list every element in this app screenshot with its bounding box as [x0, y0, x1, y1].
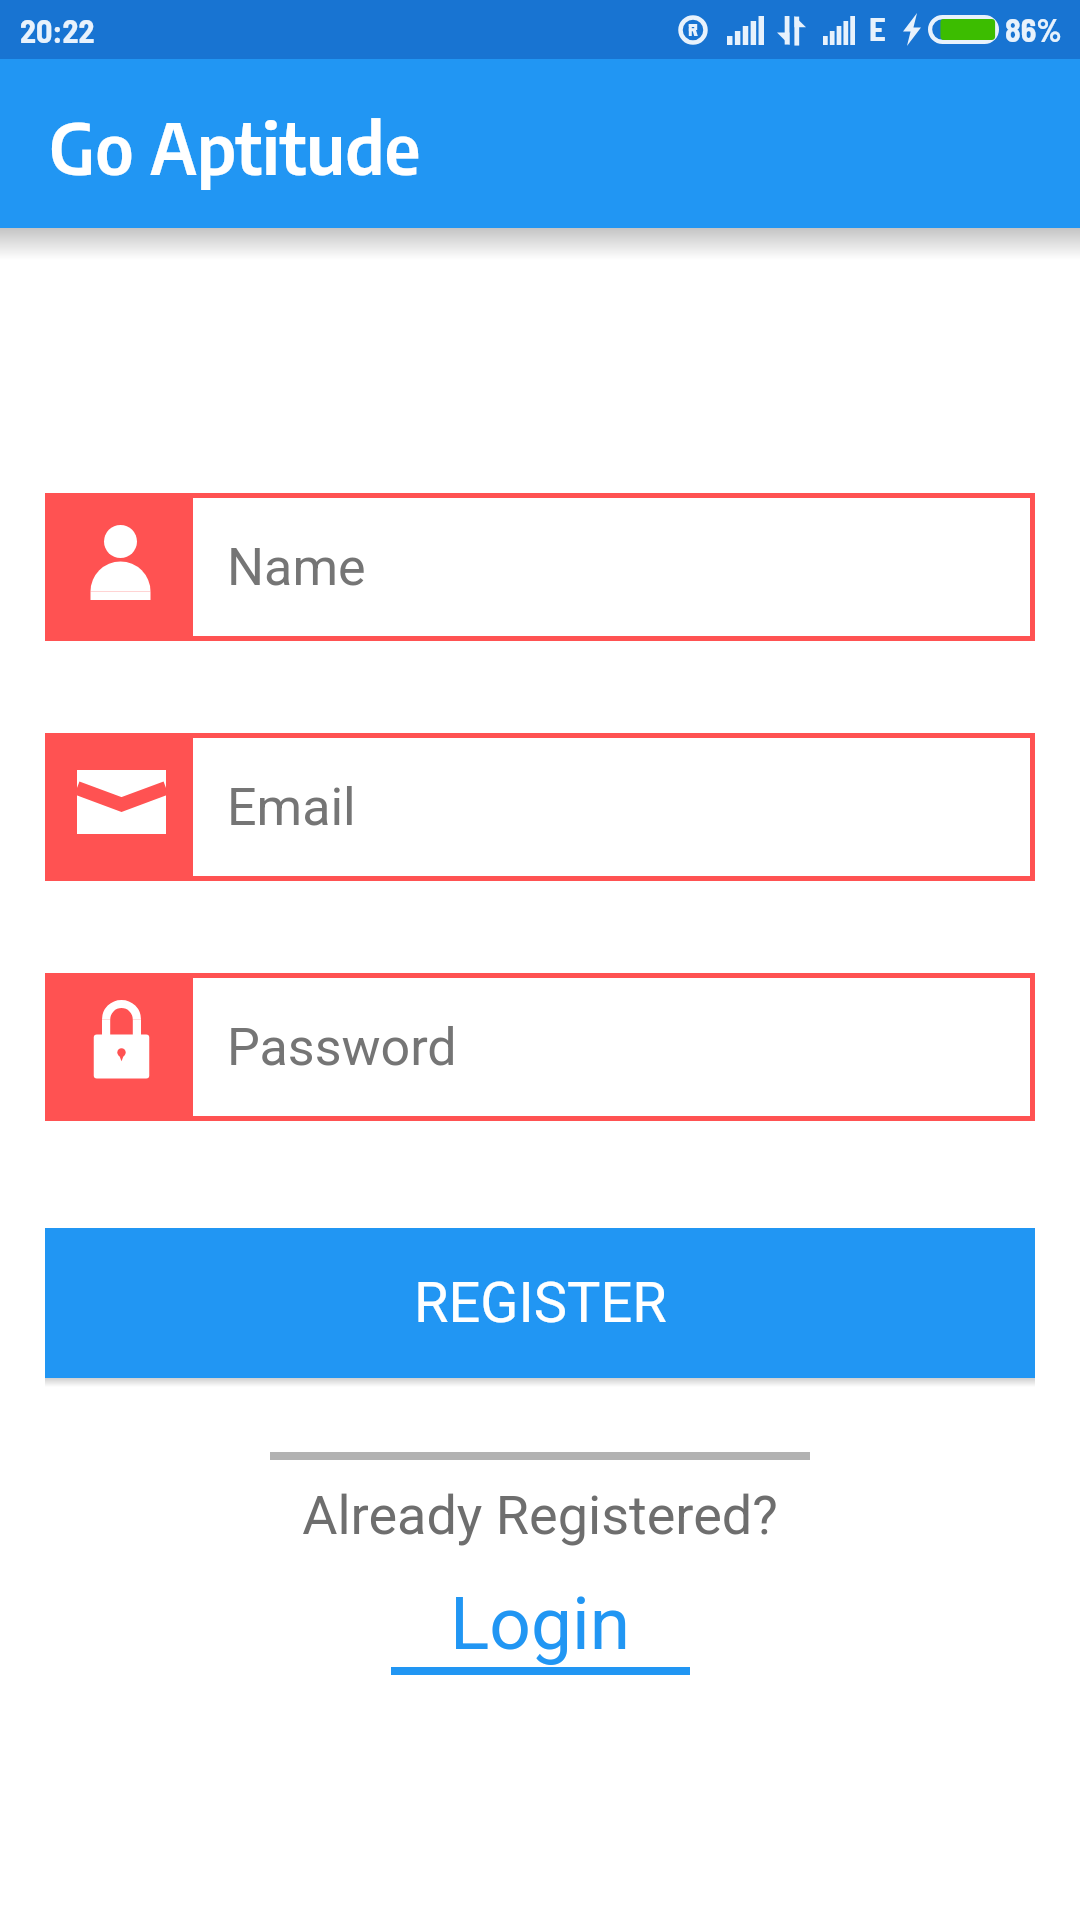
button[interactable]: Email	[45, 733, 1035, 881]
button[interactable]: Password	[45, 973, 1035, 1121]
staticText: Name	[227, 537, 366, 598]
staticText: Login	[450, 1581, 631, 1667]
other: Name	[45, 493, 193, 641]
other: Password	[45, 973, 193, 1121]
other: Email	[45, 733, 193, 881]
staticText: 86%	[1005, 10, 1062, 48]
staticText: Password	[227, 1017, 457, 1078]
button[interactable]: Login	[391, 1581, 690, 1675]
staticText: 20:22	[20, 11, 95, 49]
staticText: Email	[227, 777, 356, 838]
staticText: E	[869, 8, 886, 48]
staticText: REGISTER	[414, 1270, 667, 1336]
button[interactable]: REGISTER	[45, 1228, 1035, 1378]
staticText: Already Registered?	[0, 1484, 1080, 1547]
staticText: Go Aptitude	[49, 102, 421, 191]
button[interactable]: Name	[45, 493, 1035, 641]
